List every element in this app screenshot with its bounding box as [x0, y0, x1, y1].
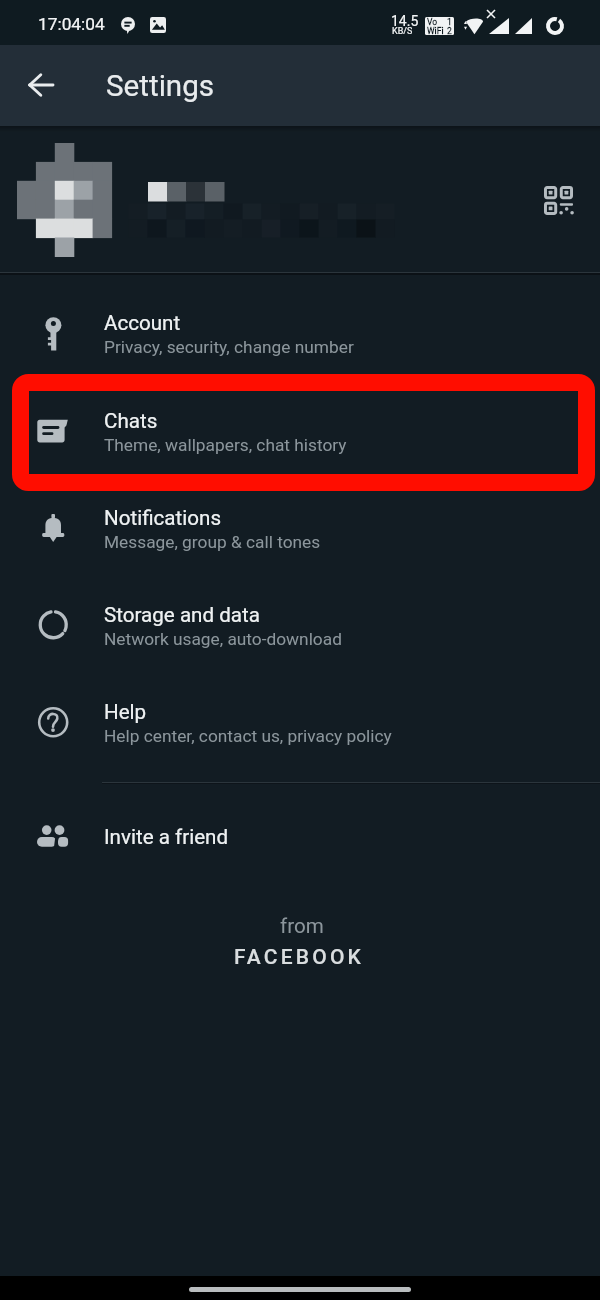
- staticText: Privacy, security, change number: [104, 337, 354, 357]
- button[interactable]: Help: [0, 671, 600, 769]
- staticText: 17:04:04: [38, 14, 105, 34]
- staticText: 14.5: [391, 13, 419, 29]
- button[interactable]: Storage and data: [0, 574, 600, 672]
- staticText: FACEBOOK: [234, 945, 365, 970]
- staticText: Theme, wallpapers, chat history: [104, 435, 347, 455]
- button[interactable]: Back: [15, 59, 67, 111]
- staticText: Notifications: [104, 506, 222, 530]
- staticText: Invite a friend: [104, 825, 229, 849]
- staticText: KB/S: [392, 26, 413, 37]
- staticText: Help center, contact us, privacy policy: [104, 726, 392, 746]
- staticText: Storage and data: [104, 603, 260, 627]
- staticText: WiFi: [427, 26, 444, 36]
- staticText: from: [280, 914, 324, 938]
- staticText: 2: [447, 26, 452, 36]
- staticText: Network usage, auto-download: [104, 629, 342, 649]
- staticText: Settings: [106, 69, 215, 104]
- staticText: 1: [447, 17, 452, 27]
- staticText: Account: [104, 311, 181, 335]
- button[interactable]: Notifications: [0, 477, 600, 575]
- button[interactable]: QR code: [0, 126, 600, 272]
- button[interactable]: Account: [0, 282, 600, 380]
- button[interactable]: Chats: [0, 380, 600, 478]
- button[interactable]: Invite a friend: [0, 796, 600, 894]
- staticText: Message, group & call tones: [104, 532, 321, 552]
- staticText: Help: [104, 700, 147, 724]
- staticText: Vo: [427, 17, 438, 27]
- button[interactable]: QR code: [534, 176, 582, 224]
- staticText: Chats: [104, 409, 158, 433]
